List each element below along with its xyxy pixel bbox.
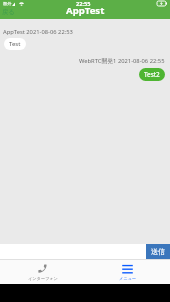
staticText: 圏外 — [3, 1, 12, 6]
staticText: WebRTC開発1 2021-08-06 22:55 — [79, 57, 165, 65]
staticText: AppTest — [66, 4, 105, 17]
button[interactable]: 送信 — [146, 244, 170, 259]
staticText: インターフォン — [28, 276, 58, 281]
staticText: 戻る — [2, 8, 15, 16]
staticText: 22:55 — [76, 0, 91, 8]
staticText: 送信 — [151, 247, 165, 256]
staticText: メニュー — [119, 276, 137, 281]
other: Menu — [122, 263, 133, 274]
staticText: Test2 — [144, 70, 160, 79]
staticText: AppTest 2021-08-06 22:53 — [3, 28, 73, 36]
other: Interphone — [37, 263, 48, 274]
button[interactable]: Interphone — [0, 259, 85, 284]
staticText: Test — [9, 40, 21, 48]
button[interactable]: 戻る — [0, 6, 17, 19]
button[interactable]: Menu — [85, 259, 170, 284]
